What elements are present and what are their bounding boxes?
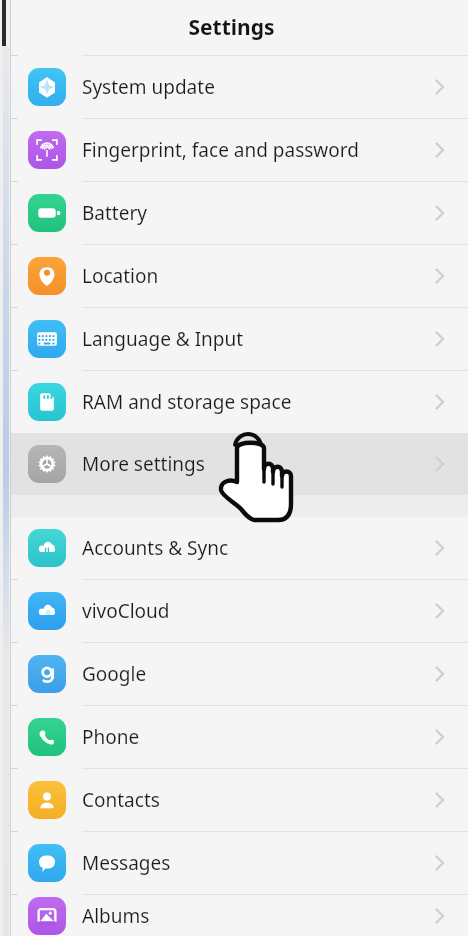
button[interactable]: System update [11, 56, 468, 118]
staticText: System update [82, 74, 215, 100]
staticText: Phone [82, 724, 140, 750]
button[interactable]: Location [11, 245, 468, 307]
staticText: Accounts & Sync [82, 535, 229, 561]
button[interactable]: Battery [11, 182, 468, 244]
staticText: Messages [82, 850, 171, 876]
button[interactable]: Accounts & Sync [11, 517, 468, 579]
staticText: Contacts [82, 787, 160, 813]
staticText: Language & Input [82, 326, 244, 352]
staticText: Battery [82, 200, 147, 226]
staticText: Settings [188, 13, 275, 42]
staticText: Fingerprint, face and password [82, 137, 359, 163]
staticText: RAM and storage space [82, 389, 292, 415]
button[interactable]: Phone [11, 706, 468, 768]
button[interactable]: Messages [11, 832, 468, 894]
button[interactable]: Contacts [11, 769, 468, 831]
button[interactable]: Fingerprint, face and password [11, 119, 468, 181]
staticText: Location [82, 263, 159, 289]
button[interactable]: vivoCloud [11, 580, 468, 642]
button[interactable]: RAM and storage space [11, 371, 468, 433]
staticText: Google [82, 661, 147, 687]
button[interactable]: More settings [11, 433, 468, 495]
staticText: More settings [82, 451, 205, 477]
button[interactable]: Language & Input [11, 308, 468, 370]
button[interactable]: Google [11, 643, 468, 705]
staticText: vivoCloud [82, 598, 170, 624]
button[interactable]: Albums [11, 895, 468, 936]
staticText: Albums [82, 903, 150, 929]
